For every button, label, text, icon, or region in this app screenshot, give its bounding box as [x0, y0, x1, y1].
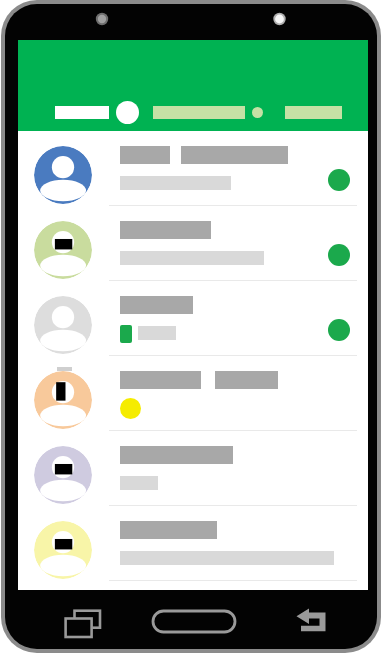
button[interactable]: [18, 506, 368, 581]
button[interactable]: [18, 431, 368, 506]
button[interactable]: [18, 281, 368, 356]
button[interactable]: Home: [151, 609, 236, 634]
button[interactable]: Recents: [61, 605, 107, 639]
button[interactable]: [18, 356, 368, 431]
button[interactable]: Back: [294, 606, 328, 634]
button[interactable]: [18, 206, 368, 281]
button[interactable]: Avatar: [116, 101, 139, 124]
button[interactable]: [18, 131, 368, 206]
